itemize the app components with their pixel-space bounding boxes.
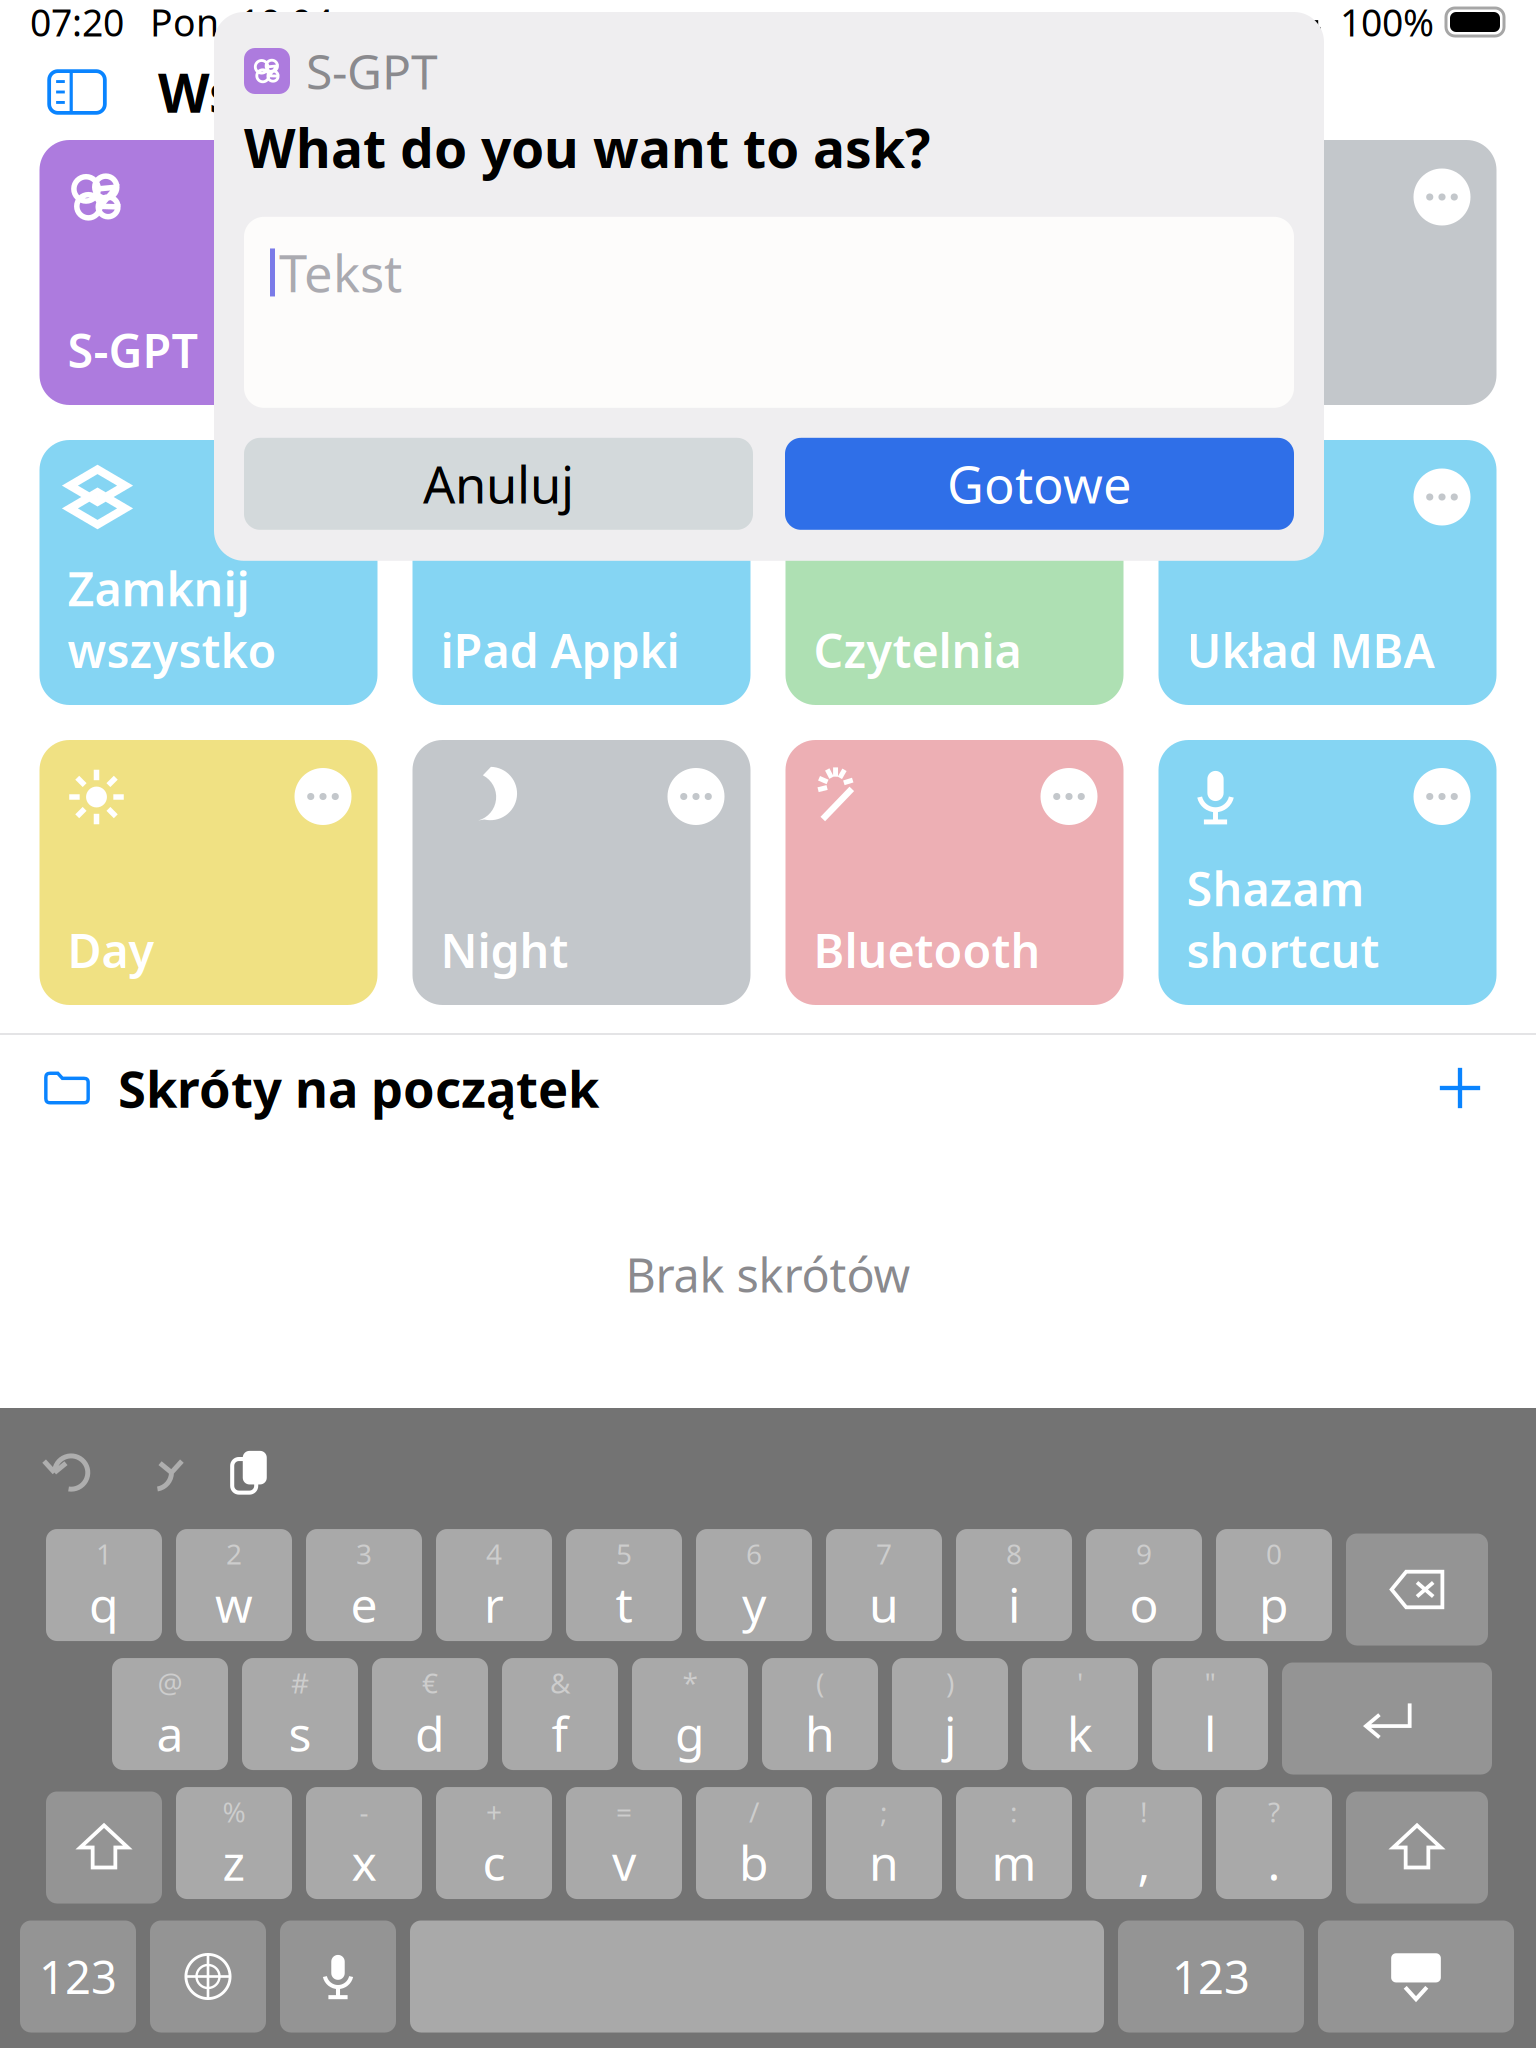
- button[interactable]: 7: [826, 1533, 942, 1645]
- button[interactable]: 3: [306, 1533, 422, 1645]
- button[interactable]: Return: [1282, 1662, 1492, 1774]
- button[interactable]: €: [372, 1662, 488, 1774]
- button[interactable]: Space: [410, 1920, 1104, 2032]
- staticText: *: [682, 1664, 697, 1701]
- button[interactable]: 6: [696, 1533, 812, 1645]
- button[interactable]: *: [632, 1662, 748, 1774]
- staticText: /: [749, 1793, 759, 1830]
- button[interactable]: &: [502, 1662, 618, 1774]
- button[interactable]: Dictate: [280, 1920, 396, 2032]
- button[interactable]: Numbers: [1118, 1920, 1304, 2032]
- button[interactable]: GIF: [1158, 140, 1496, 405]
- button[interactable]: Shift: [1346, 1791, 1488, 1903]
- button[interactable]: =: [566, 1791, 682, 1903]
- button[interactable]: 4: [436, 1533, 552, 1645]
- button[interactable]: iPad Appki: [412, 440, 750, 705]
- staticText: 0: [1266, 1535, 1282, 1572]
- button[interactable]: (: [762, 1662, 878, 1774]
- button[interactable]: ?: [1216, 1791, 1332, 1903]
- staticText: €: [422, 1664, 438, 1701]
- button[interactable]: Numbers: [20, 1920, 136, 2032]
- button[interactable]: Dismiss keyboard: [1318, 1920, 1514, 2032]
- staticText: -: [359, 1793, 368, 1830]
- button[interactable]: !: [1086, 1791, 1202, 1903]
- staticText: Gotowe: [947, 450, 1132, 517]
- staticText: z: [222, 1830, 245, 1894]
- button[interactable]: 0: [1216, 1533, 1332, 1645]
- button[interactable]: ;: [826, 1791, 942, 1903]
- button[interactable]: Czytelnia: [785, 440, 1123, 705]
- staticText: c: [482, 1830, 505, 1894]
- staticText: i: [1008, 1572, 1020, 1636]
- staticText: u: [869, 1572, 899, 1636]
- staticText: o: [1129, 1572, 1158, 1636]
- button[interactable]: Next keyboard: [150, 1920, 266, 2032]
- staticText: a: [156, 1701, 183, 1765]
- staticText: 6: [746, 1535, 762, 1572]
- button[interactable]: Shift: [46, 1791, 162, 1903]
- button[interactable]: #: [242, 1662, 358, 1774]
- button[interactable]: ': [1022, 1662, 1138, 1774]
- staticText: %: [222, 1793, 245, 1830]
- button[interactable]: Układ MBA: [1158, 440, 1496, 705]
- staticText: iPad Appki: [440, 619, 679, 681]
- staticText: 1: [96, 1535, 112, 1572]
- staticText: 100%: [1340, 0, 1434, 47]
- staticText: Brak skrótów: [625, 1243, 910, 1305]
- staticText: h: [805, 1701, 835, 1765]
- button[interactable]: Day: [39, 740, 377, 1005]
- button[interactable]: Bluetooth: [785, 740, 1123, 1005]
- staticText: v: [612, 1830, 636, 1894]
- staticText: &: [550, 1664, 570, 1701]
- button[interactable]: Gotowe: [785, 438, 1294, 530]
- staticText: ': [1077, 1664, 1083, 1701]
- button[interactable]: S-GPT: [39, 140, 377, 405]
- staticText: y: [742, 1572, 766, 1636]
- button[interactable]: 9: [1086, 1533, 1202, 1645]
- button[interactable]: Delete: [1346, 1533, 1488, 1645]
- button[interactable]: Show sidebar: [40, 55, 114, 129]
- button[interactable]: /: [696, 1791, 812, 1903]
- staticText: Wszystkie skróty: [158, 57, 606, 127]
- staticText: w: [215, 1572, 253, 1636]
- button[interactable]: @: [112, 1662, 228, 1774]
- button[interactable]: Paste: [212, 1436, 286, 1506]
- button[interactable]: Anuluj: [244, 438, 753, 530]
- staticText: 07:20: [30, 0, 124, 47]
- button[interactable]: :: [956, 1791, 1072, 1903]
- button[interactable]: Add shortcut: [1424, 1052, 1496, 1124]
- button[interactable]: %: [176, 1791, 292, 1903]
- staticText: !: [1140, 1793, 1148, 1830]
- button[interactable]: -: [306, 1791, 422, 1903]
- staticText: m: [991, 1830, 1036, 1894]
- button[interactable]: Night: [412, 740, 750, 1005]
- staticText: 2: [226, 1535, 242, 1572]
- button[interactable]: +: [436, 1791, 552, 1903]
- staticText: p: [1259, 1572, 1289, 1636]
- staticText: n: [869, 1830, 899, 1894]
- staticText: t: [615, 1572, 632, 1636]
- button[interactable]: 8: [956, 1533, 1072, 1645]
- staticText: r: [484, 1572, 504, 1636]
- staticText: #: [291, 1664, 309, 1701]
- button[interactable]: [785, 140, 1123, 405]
- button[interactable]: 5: [566, 1533, 682, 1645]
- staticText: ?: [1268, 1793, 1280, 1830]
- button[interactable]: ): [892, 1662, 1008, 1774]
- button[interactable]: 2: [176, 1533, 292, 1645]
- button[interactable]: Undo: [30, 1436, 104, 1506]
- button[interactable]: 1: [46, 1533, 162, 1645]
- staticText: ": [1204, 1664, 1215, 1701]
- button[interactable]: Redo: [122, 1436, 196, 1506]
- button[interactable]: Shazam shortcut: [1158, 740, 1496, 1005]
- button[interactable]: Zamknij wszystko: [39, 440, 377, 705]
- staticText: 123: [1172, 1946, 1250, 2007]
- staticText: :: [1010, 1793, 1018, 1830]
- staticText: Skróty na początek: [118, 1054, 599, 1122]
- button[interactable]: [412, 140, 750, 405]
- staticText: Bluetooth: [813, 919, 1040, 981]
- staticText: S-GPT: [67, 319, 198, 381]
- staticText: Zamknij wszystko: [67, 557, 276, 681]
- staticText: 8: [1006, 1535, 1022, 1572]
- button[interactable]: ": [1152, 1662, 1268, 1774]
